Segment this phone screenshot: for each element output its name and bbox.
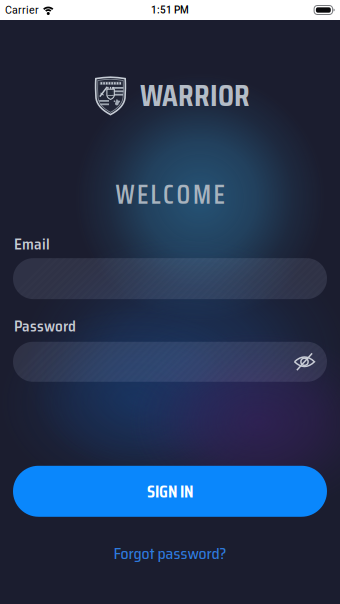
button[interactable]: SIGN IN: [13, 466, 327, 517]
staticText: E: [213, 173, 224, 215]
staticText: 1:51 PM: [151, 4, 189, 16]
staticText: W: [115, 173, 134, 215]
staticText: C: [163, 173, 174, 215]
staticText: Email: [14, 232, 50, 256]
staticText: WARRIOR: [140, 70, 250, 120]
staticText: O: [176, 173, 190, 215]
staticText: SIGN IN: [147, 477, 193, 505]
staticText: Forgot password?: [113, 541, 226, 566]
staticText: L: [150, 173, 160, 215]
staticText: Carrier: [5, 4, 39, 16]
staticText: E: [137, 173, 148, 215]
button[interactable]: Forgot password?: [113, 541, 226, 566]
staticText: M: [193, 173, 211, 215]
button[interactable]: Show password: [287, 347, 321, 377]
staticText: Password: [14, 314, 76, 338]
